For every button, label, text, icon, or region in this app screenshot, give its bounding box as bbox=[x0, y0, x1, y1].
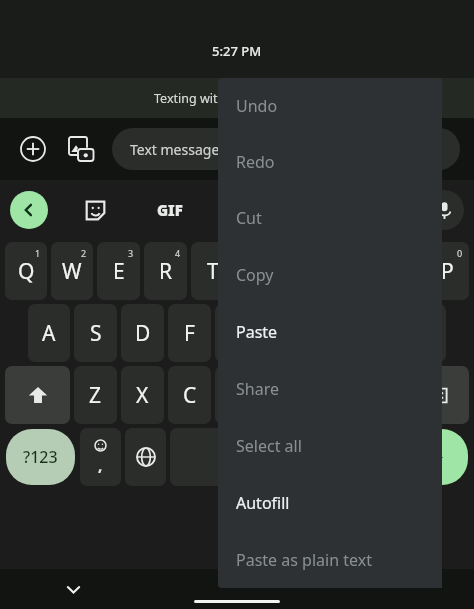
button[interactable]: C bbox=[168, 366, 211, 424]
button[interactable]: Y bbox=[238, 242, 281, 300]
button[interactable]: S bbox=[74, 304, 117, 362]
button[interactable]: Add attachment bbox=[14, 130, 52, 168]
button[interactable]: W bbox=[51, 242, 93, 300]
staticText: D bbox=[135, 319, 151, 348]
staticText: Autofill bbox=[236, 492, 290, 514]
staticText: Q bbox=[18, 257, 35, 286]
staticText: GIF bbox=[157, 200, 183, 220]
staticText: Y bbox=[254, 257, 266, 286]
staticText: 1 bbox=[35, 247, 41, 259]
button[interactable]: R bbox=[144, 242, 187, 300]
button[interactable]: Autofill bbox=[218, 474, 442, 531]
staticText: Select all bbox=[236, 435, 302, 457]
staticText: X bbox=[136, 381, 149, 410]
staticText: G bbox=[229, 319, 245, 348]
staticText: Texting with Justin bbox=[154, 90, 262, 107]
staticText: F bbox=[184, 319, 195, 348]
staticText: Undo bbox=[236, 95, 278, 117]
staticText: P bbox=[441, 257, 454, 286]
button[interactable]: T bbox=[191, 242, 234, 300]
button[interactable]: B bbox=[262, 366, 305, 424]
staticText: Z bbox=[89, 381, 102, 410]
button[interactable]: Hide keyboard bbox=[56, 572, 90, 606]
staticText: T bbox=[207, 257, 219, 286]
button[interactable]: Space bbox=[170, 428, 353, 486]
button[interactable]: Cut bbox=[218, 190, 442, 246]
staticText: H bbox=[276, 319, 292, 348]
button[interactable]: D bbox=[121, 304, 164, 362]
staticText: 3 bbox=[128, 247, 134, 259]
staticText: 5:27 PM bbox=[212, 42, 262, 60]
staticText: 2 bbox=[81, 247, 87, 259]
button[interactable]: E bbox=[97, 242, 140, 300]
staticText: V bbox=[230, 381, 243, 410]
button[interactable]: Shift bbox=[5, 366, 70, 424]
button[interactable]: Emoji and comma bbox=[80, 428, 121, 486]
button[interactable]: Text message bbox=[112, 128, 460, 170]
staticText: W bbox=[62, 257, 82, 286]
button[interactable]: P bbox=[426, 242, 469, 300]
staticText: 4 bbox=[175, 247, 181, 259]
button[interactable]: Stickers bbox=[76, 191, 114, 229]
staticText: , bbox=[98, 455, 103, 475]
button[interactable]: Change keyboard language bbox=[125, 428, 166, 486]
staticText: ?123 bbox=[23, 446, 58, 468]
button[interactable]: Copy bbox=[218, 246, 442, 303]
button[interactable]: Select all bbox=[218, 417, 442, 474]
button[interactable]: V bbox=[215, 366, 258, 424]
button[interactable]: Q bbox=[5, 242, 47, 300]
staticText: B bbox=[277, 381, 291, 410]
staticText: S bbox=[90, 319, 102, 348]
button[interactable]: Camera and gallery bbox=[62, 130, 100, 168]
staticText: Paste as plain text bbox=[236, 549, 372, 571]
staticText: Text message bbox=[130, 140, 220, 159]
button[interactable]: X bbox=[121, 366, 164, 424]
staticText: C bbox=[183, 381, 197, 410]
staticText: 0 bbox=[457, 247, 463, 259]
staticText: Paste bbox=[236, 321, 278, 343]
button[interactable]: Backspace bbox=[403, 366, 469, 424]
staticText: Redo bbox=[236, 151, 275, 173]
button[interactable]: Redo bbox=[218, 134, 442, 190]
button[interactable]: F bbox=[168, 304, 211, 362]
button[interactable]: A bbox=[28, 304, 70, 362]
button[interactable]: Paste as plain text bbox=[218, 531, 442, 588]
button[interactable]: Send bbox=[403, 429, 468, 485]
button[interactable]: L bbox=[403, 304, 446, 362]
button[interactable]: Paste bbox=[218, 303, 442, 360]
button[interactable]: Back bbox=[10, 191, 48, 229]
button[interactable]: Undo bbox=[218, 78, 442, 134]
button[interactable]: Share bbox=[218, 360, 442, 417]
staticText: Cut bbox=[236, 207, 262, 229]
button[interactable]: G bbox=[215, 304, 258, 362]
staticText: R bbox=[159, 257, 173, 286]
button[interactable]: Z bbox=[74, 366, 117, 424]
staticText: Share bbox=[236, 378, 279, 400]
button[interactable]: Voice input bbox=[424, 190, 464, 230]
button[interactable]: H bbox=[262, 304, 305, 362]
button[interactable]: ?123 bbox=[6, 429, 75, 485]
button[interactable]: GIF bbox=[148, 191, 192, 229]
